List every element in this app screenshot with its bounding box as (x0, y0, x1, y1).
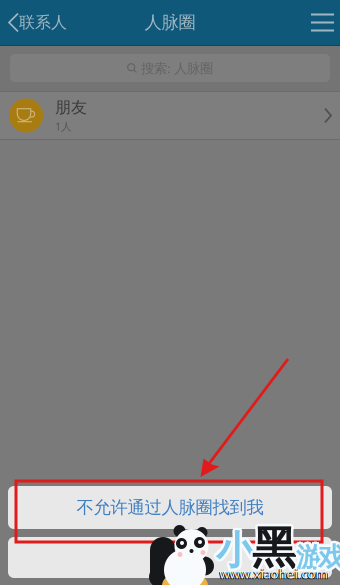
staticText: 黑 (252, 519, 296, 573)
staticText: 小 (216, 529, 255, 577)
staticText: 人脉圈 (144, 12, 195, 33)
staticText: 游 (294, 541, 321, 574)
staticText: 黑 (254, 519, 298, 573)
staticText: 游 (294, 539, 321, 572)
staticText: 黑 (250, 521, 294, 575)
staticText: 黑 (254, 521, 298, 575)
staticText: 游 (294, 543, 321, 576)
staticText: 小 (218, 525, 257, 572)
button[interactable]: 取消 (8, 537, 332, 578)
staticText: 1人 (55, 119, 72, 133)
staticText: www.xiaohei.com (219, 564, 327, 582)
staticText: 戏 (318, 539, 340, 571)
staticText: 戏 (320, 543, 340, 576)
staticText: 小 (216, 527, 255, 574)
staticText: 小 (216, 525, 255, 572)
staticText: www.xiaohei.com (220, 565, 328, 583)
staticText: 游 (296, 541, 323, 574)
staticText: 小 (214, 527, 253, 574)
staticText: 朋友 (55, 98, 87, 117)
staticText: 游 (298, 539, 325, 572)
staticText: 戏 (320, 541, 340, 574)
staticText: 黑 (250, 523, 294, 577)
staticText: 黑 (252, 521, 296, 575)
staticText: 小 (214, 529, 253, 576)
staticText: 戏 (318, 543, 340, 576)
staticText: 搜索: 人脉圈 (141, 59, 213, 77)
button[interactable]: Menu (299, 0, 340, 44)
staticText: 小 (218, 529, 257, 576)
button[interactable]: 联系人 (0, 0, 73, 44)
staticText: 戏 (316, 541, 340, 574)
staticText: 联系人 (19, 13, 67, 32)
staticText: 小 (218, 527, 257, 574)
staticText: 黑 (254, 523, 298, 577)
button[interactable]: 不允许通过人脉圈找到我 (8, 486, 332, 529)
staticText: 游 (296, 543, 323, 576)
staticText: 取消 (153, 547, 187, 568)
staticText: 黑 (252, 523, 296, 577)
staticText: 不允许通过人脉圈找到我 (76, 497, 263, 518)
staticText: 小 (214, 525, 253, 572)
button[interactable]: 朋友 (0, 92, 340, 139)
staticText: www.xiaohei.com (219, 565, 327, 583)
staticText: 戏 (318, 541, 340, 574)
staticText: 戏 (320, 539, 340, 572)
staticText: 游 (296, 539, 323, 571)
staticText: 戏 (316, 539, 340, 572)
staticText: 黑 (250, 519, 294, 573)
staticText: 游 (298, 543, 325, 576)
staticText: 戏 (316, 543, 340, 576)
staticText: 游 (298, 541, 325, 574)
